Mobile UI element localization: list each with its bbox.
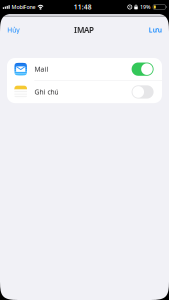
staticText: 19% [140,3,151,11]
staticText: 11:48 [74,3,92,11]
staticText: Lưu [149,25,162,34]
staticText: Ghi chú [34,87,58,96]
button[interactable]: Mail [7,58,162,80]
button[interactable]: Lưu [142,20,169,39]
staticText: MobiFone [12,3,36,11]
button[interactable]: Ghi chú [7,81,162,103]
button[interactable]: Hủy [0,20,26,39]
staticText: Hủy [7,25,19,34]
staticText: IMAP [74,24,94,35]
staticText: Mail [34,65,48,74]
